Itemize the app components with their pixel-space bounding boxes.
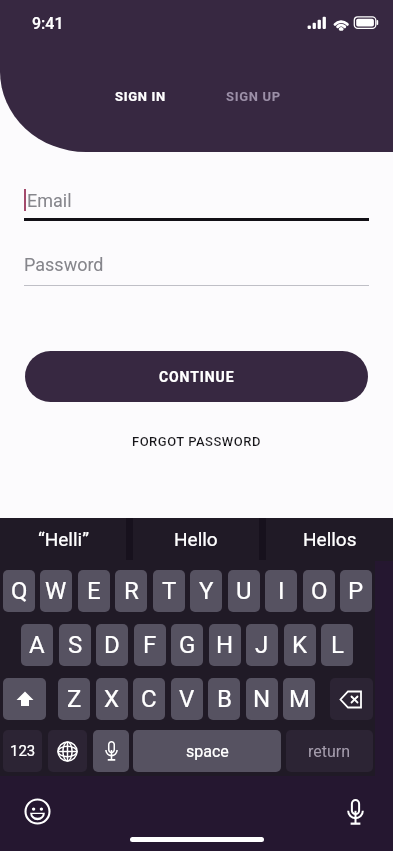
staticText: D — [104, 631, 120, 659]
staticText: A — [29, 631, 45, 659]
button[interactable]: Q — [3, 570, 35, 612]
button[interactable]: M — [283, 678, 315, 720]
button[interactable]: Z — [58, 678, 90, 720]
staticText: Password — [24, 254, 104, 275]
button[interactable]: B — [208, 678, 240, 720]
button[interactable]: Voice input — [93, 730, 129, 772]
staticText: Hello — [174, 528, 218, 550]
staticText: X — [104, 685, 120, 713]
staticText: 9:41 — [32, 14, 64, 33]
staticText: return — [308, 742, 351, 761]
staticText: Q — [11, 577, 28, 605]
button[interactable]: H — [209, 624, 241, 666]
button[interactable]: T — [153, 570, 185, 612]
button[interactable]: Backspace — [330, 678, 373, 720]
button[interactable]: SIGN IN — [109, 84, 172, 109]
staticText: R — [124, 577, 139, 605]
staticText: Z — [67, 685, 82, 713]
staticText: O — [311, 577, 328, 605]
staticText: I — [278, 577, 285, 605]
staticText: V — [179, 685, 195, 713]
button[interactable]: O — [303, 570, 335, 612]
staticText: CONTINUE — [159, 369, 235, 385]
staticText: C — [141, 685, 157, 713]
button[interactable]: U — [228, 570, 260, 612]
button[interactable]: G — [171, 624, 203, 666]
staticText: FORGOT PASSWORD — [132, 434, 261, 449]
button[interactable]: E — [78, 570, 110, 612]
staticText: SIGN UP — [226, 89, 281, 104]
staticText: J — [255, 631, 269, 659]
button[interactable]: X — [96, 678, 128, 720]
button[interactable]: K — [284, 624, 316, 666]
button[interactable]: N — [246, 678, 278, 720]
button[interactable]: S — [59, 624, 91, 666]
button[interactable]: D — [96, 624, 128, 666]
staticText: G — [179, 631, 196, 659]
staticText: Hellos — [303, 528, 357, 550]
button[interactable]: L — [321, 624, 353, 666]
staticText: P — [348, 577, 364, 605]
button[interactable]: P — [340, 570, 372, 612]
button[interactable]: F — [134, 624, 166, 666]
button[interactable]: A — [21, 624, 53, 666]
button[interactable]: return — [286, 730, 373, 772]
button[interactable]: Switch keyboard language — [48, 730, 87, 772]
staticText: K — [292, 631, 308, 659]
staticText: space — [186, 742, 229, 761]
button[interactable]: Dictation — [338, 794, 373, 829]
button[interactable]: Emoji — [20, 794, 55, 829]
staticText: B — [217, 685, 232, 713]
staticText: Y — [199, 577, 214, 605]
staticText: “Helli” — [38, 528, 89, 550]
button[interactable]: CONTINUE — [25, 351, 368, 402]
button[interactable]: Hellos — [266, 518, 393, 560]
staticText: S — [68, 631, 83, 659]
button[interactable]: I — [265, 570, 297, 612]
staticText: L — [331, 631, 344, 659]
staticText: W — [45, 577, 67, 605]
button[interactable]: Hello — [133, 518, 259, 560]
button[interactable]: R — [115, 570, 147, 612]
button[interactable]: Y — [190, 570, 222, 612]
button[interactable]: J — [246, 624, 278, 666]
button[interactable]: SIGN UP — [220, 84, 287, 109]
staticText: SIGN IN — [115, 89, 166, 104]
staticText: N — [253, 685, 271, 713]
button[interactable]: V — [171, 678, 203, 720]
button[interactable]: FORGOT PASSWORD — [122, 430, 271, 453]
button[interactable]: 123 — [3, 730, 42, 772]
button[interactable]: C — [133, 678, 165, 720]
staticText: T — [162, 577, 177, 605]
staticText: M — [289, 685, 310, 713]
staticText: H — [216, 631, 234, 659]
staticText: U — [236, 577, 252, 605]
button[interactable]: W — [40, 570, 72, 612]
staticText: Email — [27, 190, 72, 211]
button[interactable]: space — [133, 730, 281, 772]
button[interactable]: Shift — [3, 678, 46, 720]
staticText: 123 — [10, 742, 36, 760]
staticText: F — [143, 631, 157, 659]
staticText: E — [87, 577, 101, 605]
button[interactable]: “Helli” — [0, 518, 126, 560]
